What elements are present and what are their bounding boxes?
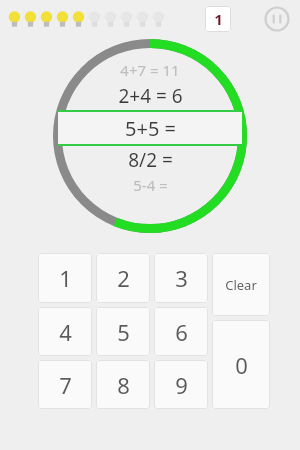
staticText: 1 (59, 263, 72, 293)
button[interactable]: 2 (96, 253, 150, 303)
staticText: 7 (59, 370, 72, 400)
staticText: 3 (175, 263, 188, 293)
button[interactable]: 4 (38, 307, 92, 356)
button[interactable]: 7 (38, 360, 92, 409)
staticText: 1 (214, 9, 223, 29)
button[interactable]: 0 (212, 320, 270, 409)
staticText: Clear (225, 276, 257, 294)
button[interactable]: Clear (212, 253, 270, 316)
button[interactable]: 9 (154, 360, 208, 409)
button[interactable]: 6 (154, 307, 208, 356)
button[interactable]: 1 (38, 253, 92, 303)
staticText: 2 (117, 263, 130, 293)
staticText: 9 (175, 370, 188, 400)
button[interactable]: 8 (96, 360, 150, 409)
staticText: 2+4 = 6 (118, 83, 183, 109)
staticText: 5+5 = (125, 115, 176, 142)
staticText: 5-4 = (133, 175, 168, 195)
button[interactable]: Pause (264, 6, 290, 32)
button[interactable]: 5 (96, 307, 150, 356)
staticText: 4+7 = 11 (120, 60, 180, 80)
staticText: 0 (235, 350, 248, 380)
staticText: 5 (117, 317, 130, 347)
staticText: 6 (175, 317, 188, 347)
staticText: 8/2 = (128, 147, 173, 173)
staticText: 8 (117, 370, 130, 400)
staticText: 4 (59, 317, 72, 347)
button[interactable]: 3 (154, 253, 208, 303)
button[interactable]: 1 (205, 6, 231, 32)
